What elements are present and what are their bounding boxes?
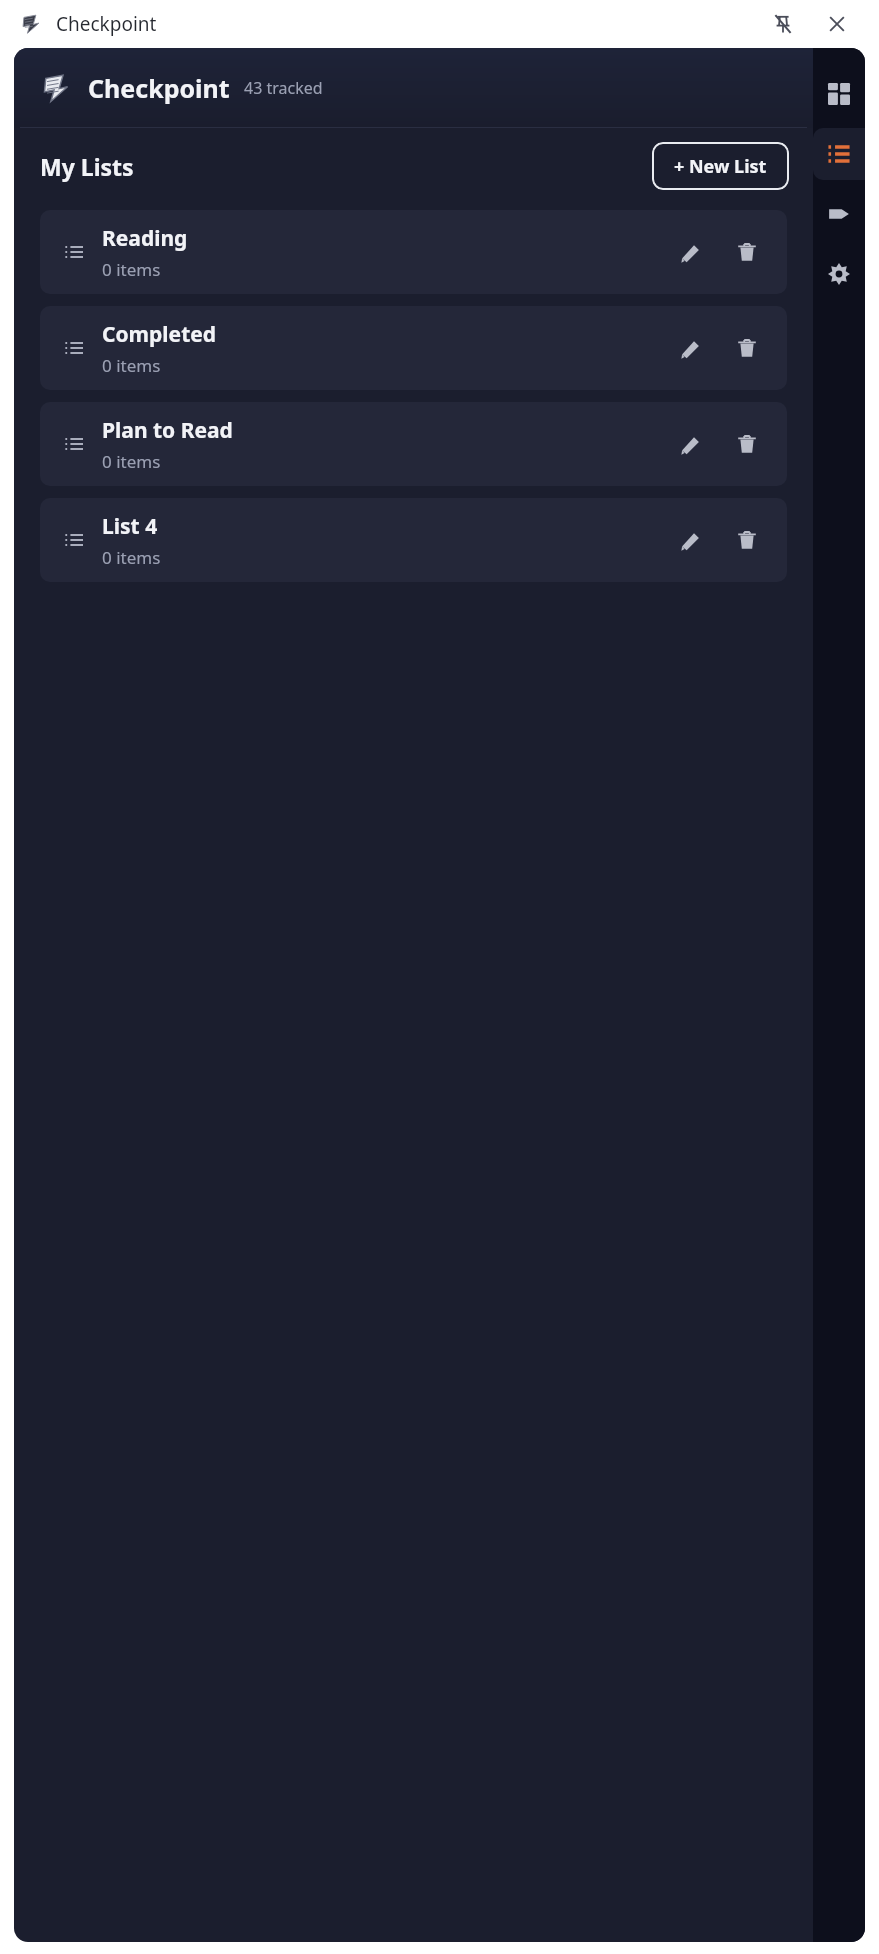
- staticText: Reading: [102, 224, 188, 253]
- staticText: My Lists: [40, 151, 134, 182]
- button[interactable]: Reorder Reading: [40, 210, 787, 294]
- button[interactable]: Delete List 4: [725, 518, 769, 562]
- button[interactable]: Reorder Completed: [58, 332, 90, 364]
- staticText: 0 items: [102, 258, 161, 281]
- button[interactable]: Reorder Reading: [58, 236, 90, 268]
- staticText: 0 items: [102, 450, 161, 473]
- button[interactable]: Lists: [813, 128, 865, 180]
- staticText: 0 items: [102, 354, 161, 377]
- staticText: Checkpoint: [88, 71, 230, 105]
- button[interactable]: Reorder Completed: [40, 306, 787, 390]
- button[interactable]: Reorder List 4: [58, 524, 90, 556]
- staticText: Plan to Read: [102, 416, 233, 445]
- staticText: Checkpoint: [56, 11, 157, 37]
- button[interactable]: Reorder Plan to Read: [40, 402, 787, 486]
- button[interactable]: Delete Reading: [725, 230, 769, 274]
- button[interactable]: Reorder Plan to Read: [58, 428, 90, 460]
- button[interactable]: Tags: [813, 188, 865, 240]
- button[interactable]: Delete Completed: [725, 326, 769, 370]
- button[interactable]: Edit Reading: [669, 230, 713, 274]
- staticText: Completed: [102, 320, 217, 349]
- button[interactable]: Edit Plan to Read: [669, 422, 713, 466]
- button[interactable]: Settings: [813, 248, 865, 300]
- button[interactable]: Delete Plan to Read: [725, 422, 769, 466]
- button[interactable]: Edit Completed: [669, 326, 713, 370]
- staticText: 0 items: [102, 546, 161, 569]
- button[interactable]: Close: [815, 2, 859, 46]
- staticText: List 4: [102, 512, 158, 541]
- button[interactable]: Unpin window: [761, 2, 805, 46]
- button[interactable]: Reorder List 4: [40, 498, 787, 582]
- staticText: + New List: [674, 154, 767, 179]
- button[interactable]: + New List: [652, 142, 789, 190]
- staticText: 43 tracked: [244, 77, 323, 99]
- button[interactable]: Edit List 4: [669, 518, 713, 562]
- button[interactable]: Dashboard: [813, 68, 865, 120]
